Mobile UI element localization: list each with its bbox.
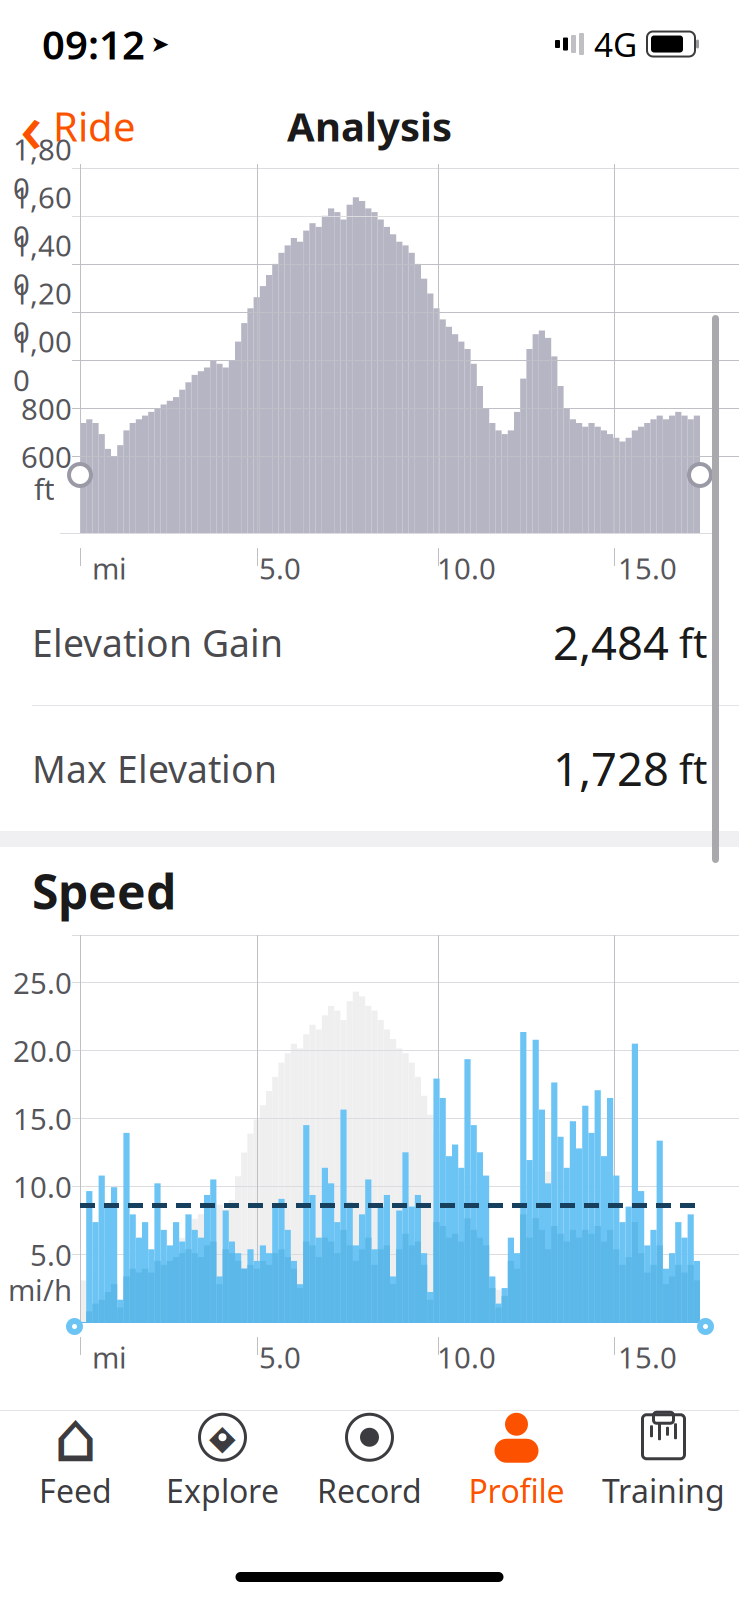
staticText: 25.0	[13, 963, 72, 1002]
staticText: mi	[92, 548, 127, 587]
staticText: Record	[317, 1469, 422, 1512]
staticText: ft	[34, 469, 55, 508]
button[interactable]: ◆	[149, 1414, 296, 1510]
staticText: 15.0	[13, 1099, 72, 1138]
staticText: Explore	[166, 1469, 279, 1512]
staticText: 15.0	[618, 548, 677, 587]
button[interactable]: Profile	[443, 1414, 590, 1510]
staticText: 2,484	[553, 612, 669, 673]
staticText: 1,800	[13, 129, 72, 207]
staticText: 10.0	[437, 1337, 496, 1376]
button[interactable]: ⌂	[2, 1414, 149, 1510]
staticText: Training	[602, 1469, 725, 1512]
staticText: 600	[21, 437, 72, 476]
staticText: 1,728	[553, 738, 669, 799]
button[interactable]: Training	[590, 1414, 737, 1510]
staticText: 5.0	[259, 548, 301, 587]
staticText: 10.0	[13, 1167, 72, 1206]
button[interactable]: ‹	[0, 74, 136, 178]
staticText: 20.0	[13, 1031, 72, 1070]
staticText: ➤	[150, 31, 169, 57]
staticText: ft	[669, 616, 707, 669]
staticText: 5.0	[30, 1235, 72, 1274]
staticText: 800	[21, 389, 72, 428]
staticText: ⌂	[53, 1398, 97, 1477]
staticText: Feed	[39, 1469, 112, 1512]
staticText: ◆	[209, 1418, 236, 1457]
staticText: mi	[92, 1337, 127, 1376]
staticText: Ride	[53, 99, 136, 152]
staticText: 1,600	[13, 177, 72, 255]
staticText: 1,200	[13, 273, 72, 351]
staticText: Profile	[468, 1469, 564, 1512]
staticText: ft	[669, 742, 707, 795]
staticText: 1,000	[13, 321, 72, 399]
staticText: Speed	[32, 859, 176, 923]
staticText: 10.0	[437, 548, 496, 587]
staticText: 5.0	[259, 1337, 301, 1376]
staticText: Max Elevation	[32, 744, 277, 793]
button[interactable]: Max Elevation	[0, 706, 739, 831]
button[interactable]: Record	[296, 1414, 443, 1510]
staticText: ‹	[20, 80, 43, 172]
staticText: 4G	[594, 22, 637, 66]
staticText: mi/h	[8, 1270, 72, 1309]
staticText: Elevation Gain	[32, 618, 283, 667]
button[interactable]: Elevation Gain	[0, 580, 739, 705]
staticText: 15.0	[618, 1337, 677, 1376]
staticText: 1,400	[13, 225, 72, 303]
staticText: 09:12	[42, 17, 145, 70]
staticText: Analysis	[287, 99, 452, 152]
